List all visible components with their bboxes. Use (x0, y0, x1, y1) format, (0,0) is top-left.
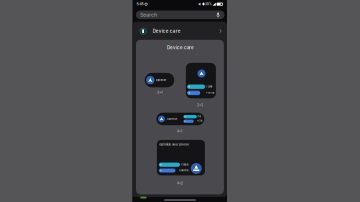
staticText: 4.06/7GB (206, 92, 214, 94)
staticText: 7.56GB (181, 163, 188, 166)
staticText: 4/7GB (197, 120, 202, 122)
button[interactable]: 7.56GB (0, 0, 360, 202)
staticText: 4x1 (177, 130, 182, 133)
staticText: Device care (167, 45, 194, 50)
staticText: 7.5GB (197, 116, 201, 118)
button[interactable]: Device care (0, 0, 360, 202)
button[interactable]: Search (0, 0, 360, 202)
staticText: 5:45 (136, 2, 143, 6)
staticText: Optimize your phone (159, 143, 189, 146)
staticText: 2x1 (157, 91, 162, 94)
staticText: 4x2 (177, 182, 183, 185)
staticText: Optimize (156, 79, 166, 81)
staticText: Optimize (167, 118, 177, 120)
staticText: 2x2 (197, 103, 203, 107)
staticText: 38% (205, 2, 212, 6)
button[interactable]: Optimize your phone (0, 0, 360, 202)
button[interactable]: Optimize (0, 0, 360, 202)
staticText: Device care (153, 28, 181, 34)
staticText: Search (140, 12, 157, 18)
staticText: 4.06/7GB (179, 169, 188, 172)
button[interactable]: Optimize (0, 0, 360, 202)
staticText: 7.56GB (206, 86, 212, 88)
